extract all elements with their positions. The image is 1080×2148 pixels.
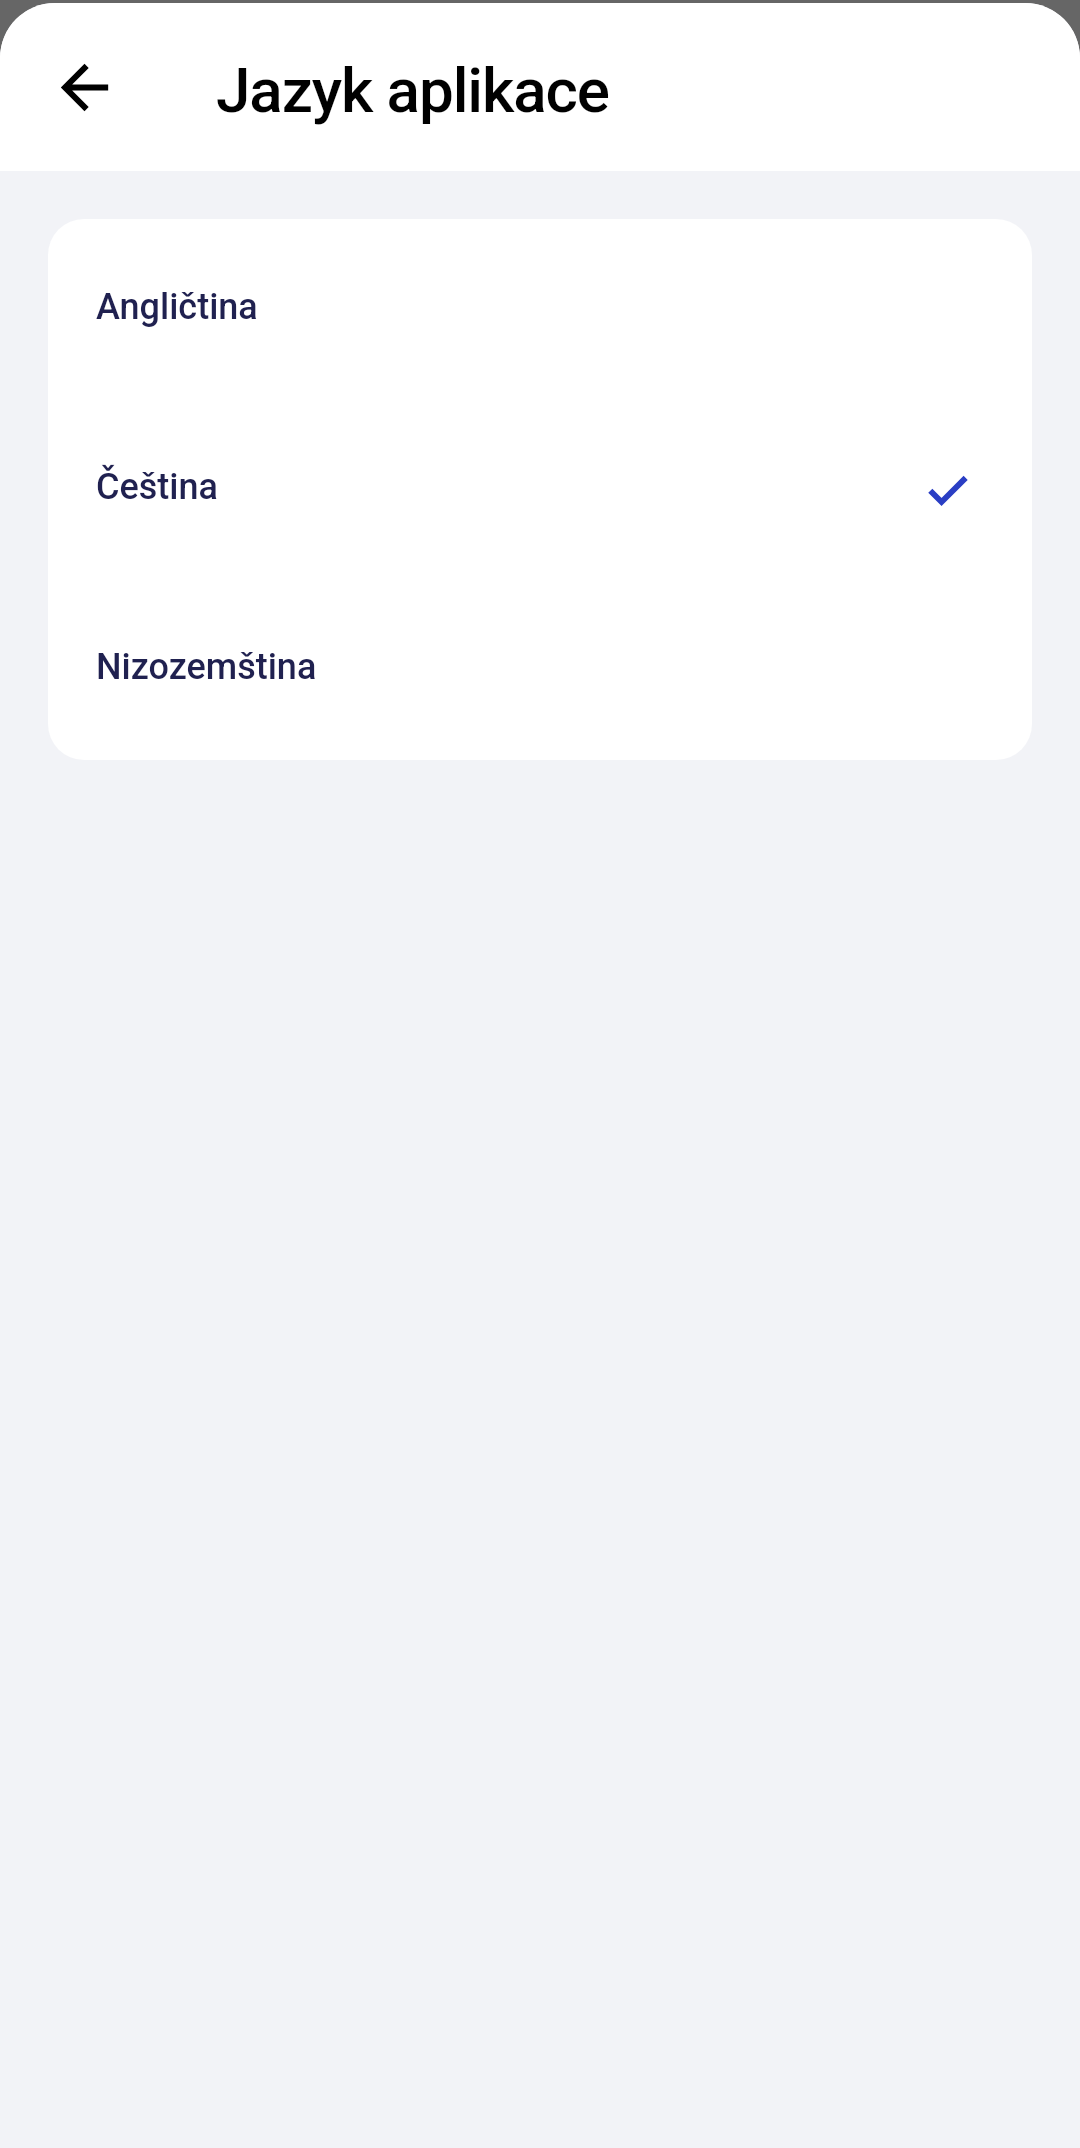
staticText: Angličtina [96,286,258,328]
button[interactable]: Angličtina [48,219,1032,400]
button[interactable]: Nizozemština [48,580,1032,760]
button[interactable]: Čeština [48,400,1032,580]
button[interactable]: Back [31,34,138,141]
staticText: Nizozemština [96,646,317,688]
staticText: Čeština [96,466,218,508]
staticText: Jazyk aplikace [216,54,609,127]
